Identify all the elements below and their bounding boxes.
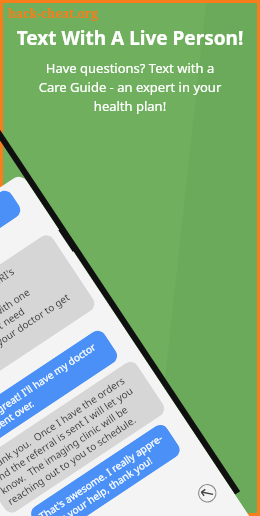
button[interactable]: Sounds great! I'll have my doctor get it… [0, 327, 121, 455]
staticText: Thank you. Once I have the orders and th… [0, 373, 150, 508]
staticText: hack-cheat.org [8, 5, 99, 21]
staticText: That's awesome. I really appre- ciate yo… [36, 431, 173, 516]
button[interactable]: Thank you. Once I have the orders and th… [0, 358, 168, 516]
button[interactable]: Send [194, 480, 220, 506]
button[interactable] [0, 187, 24, 295]
staticText: Thanks for texting in! MRI's are covered… [0, 246, 79, 402]
staticText: Have questions? Text with a Care Guide -… [3, 59, 257, 115]
staticText: Sounds great! I'll have my doctor get it… [0, 339, 106, 447]
staticText: Text With A Live Person! [3, 25, 257, 51]
button[interactable]: That's awesome. I really appre- ciate yo… [28, 421, 183, 516]
button[interactable]: Thanks for texting in! MRI's are covered… [0, 232, 98, 410]
